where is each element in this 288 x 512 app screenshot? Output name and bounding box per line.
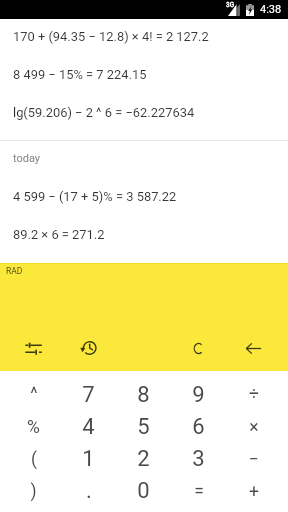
staticText: ): [30, 481, 37, 502]
staticText: 0: [137, 478, 150, 504]
button[interactable]: lg(59.206) − 2 ^ 6 = −62.227634: [0, 93, 288, 131]
staticText: 170 + (94.35 − 12.8) × 4! = 2 127.2: [13, 29, 209, 44]
button[interactable]: History: [61, 328, 116, 368]
button[interactable]: 4: [61, 411, 116, 443]
button[interactable]: 4 599 − (17 + 5)% = 3 587.22: [0, 177, 288, 215]
button[interactable]: 89.2 × 6 = 271.2: [0, 215, 288, 253]
staticText: 6: [192, 414, 205, 440]
staticText: 3G: [226, 1, 235, 9]
staticText: 8 499 − 15% = 7 224.15: [13, 67, 147, 82]
button[interactable]: 7: [61, 378, 116, 411]
staticText: 1: [82, 446, 95, 472]
button[interactable]: −: [226, 443, 281, 475]
button[interactable]: ÷: [226, 378, 281, 411]
staticText: 4:38: [260, 3, 282, 16]
staticText: lg(59.206) − 2 ^ 6 = −62.227634: [13, 105, 195, 120]
button[interactable]: 2: [116, 443, 171, 475]
button[interactable]: 0: [116, 475, 171, 507]
staticText: .: [86, 478, 92, 504]
staticText: 9: [192, 382, 205, 408]
button[interactable]: .: [61, 475, 116, 507]
button[interactable]: +: [226, 475, 281, 507]
button[interactable]: 8: [116, 378, 171, 411]
staticText: 89.2 × 6 = 271.2: [13, 227, 105, 242]
button[interactable]: 8 499 − 15% = 7 224.15: [0, 55, 288, 93]
staticText: +: [249, 481, 259, 502]
button[interactable]: 170 + (94.35 − 12.8) × 4! = 2 127.2: [0, 17, 288, 55]
staticText: 5: [137, 414, 150, 440]
button[interactable]: (: [6, 443, 61, 475]
staticText: %: [27, 417, 40, 438]
button[interactable]: 9: [171, 378, 226, 411]
button[interactable]: ^: [6, 378, 61, 411]
staticText: 4 599 − (17 + 5)% = 3 587.22: [13, 189, 177, 204]
staticText: ÷: [249, 384, 259, 405]
staticText: 3: [192, 446, 205, 472]
button[interactable]: ×: [226, 411, 281, 443]
button[interactable]: Settings: [6, 328, 61, 368]
button[interactable]: ): [6, 475, 61, 507]
button[interactable]: Clear: [171, 328, 226, 368]
staticText: −: [248, 449, 259, 470]
button[interactable]: 1: [61, 443, 116, 475]
staticText: 7: [82, 382, 95, 408]
button[interactable]: =: [171, 475, 226, 507]
button[interactable]: Backspace: [226, 328, 281, 368]
staticText: =: [194, 481, 204, 502]
staticText: ^: [30, 384, 38, 405]
staticText: ×: [249, 417, 259, 438]
button[interactable]: 6: [171, 411, 226, 443]
staticText: RAD: [6, 266, 23, 276]
staticText: today: [13, 152, 41, 165]
button[interactable]: 3: [171, 443, 226, 475]
staticText: 2: [137, 446, 150, 472]
button[interactable]: 5: [116, 411, 171, 443]
button[interactable]: %: [6, 411, 61, 443]
staticText: (: [31, 449, 37, 470]
staticText: 4: [82, 414, 95, 440]
staticText: 8: [137, 382, 150, 408]
